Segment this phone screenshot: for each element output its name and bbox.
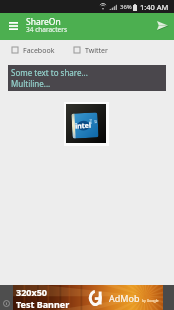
staticText: intel [75,121,91,131]
staticText: by Google [142,298,159,303]
button[interactable]: Twitter [74,46,108,54]
staticText: Multiline... [11,78,51,89]
button[interactable]: Open navigation drawer [0,13,26,40]
staticText: inside [88,118,98,124]
button[interactable]: Send [150,13,174,40]
button[interactable]: Attached image [66,104,106,143]
button[interactable]: Some text to share... [8,65,166,91]
button[interactable]: Facebook [12,46,55,54]
staticText: Test Banner [16,298,70,310]
staticText: Some text to share... [11,67,88,78]
staticText: 34 characters [26,25,68,34]
staticText: 320x50 [16,286,47,298]
staticText: AdMob [109,292,140,304]
staticText: 36% [120,3,132,11]
staticText: Twitter [85,46,108,54]
staticText: Facebook [23,46,55,54]
staticText: 1:40 AM [140,2,169,12]
button[interactable]: AdMob test banner advertisement [13,285,163,310]
staticText: ShareOn [26,16,61,28]
